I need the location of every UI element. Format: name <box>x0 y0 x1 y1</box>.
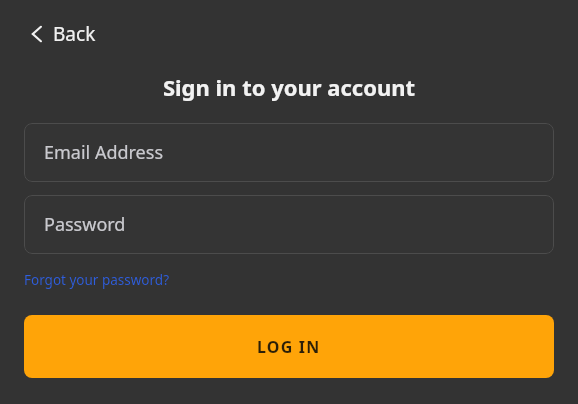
staticText: Sign in to your account <box>0 72 578 102</box>
staticText: Email Address <box>44 140 164 165</box>
button[interactable]: Email Address <box>24 123 554 182</box>
staticText: Back <box>53 21 96 47</box>
staticText: Forgot your password? <box>24 271 170 289</box>
button[interactable]: Back <box>24 16 102 52</box>
staticText: LOG IN <box>257 336 321 358</box>
button[interactable]: Forgot your password? <box>24 271 170 289</box>
button[interactable]: Password <box>24 195 554 254</box>
button[interactable]: LOG IN <box>24 315 554 378</box>
staticText: Password <box>44 212 126 237</box>
